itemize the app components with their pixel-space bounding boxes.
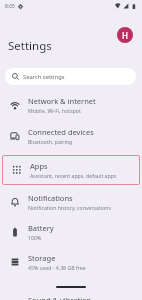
button[interactable]: Storage — [0, 247, 142, 277]
button[interactable]: Sound & vibration — [0, 289, 142, 300]
staticText: Network & internet — [28, 96, 96, 106]
button[interactable]: Search settings — [5, 68, 136, 85]
button[interactable]: Connected devices — [0, 120, 142, 151]
staticText: Notification history, conversations — [28, 204, 112, 211]
staticText: Battery — [28, 223, 54, 233]
staticText: Bluetooth, pairing — [28, 138, 73, 145]
staticText: Assistant, recent apps, default apps — [30, 172, 117, 179]
staticText: Storage — [28, 253, 56, 263]
staticText: 100% — [28, 234, 42, 241]
staticText: Notifications — [28, 193, 73, 203]
staticText: Apps — [30, 161, 48, 171]
button[interactable]: H — [117, 27, 133, 43]
staticText: 45% used - 4.38 GB free — [28, 264, 86, 271]
staticText: Search settings — [23, 73, 65, 81]
button[interactable]: Network & internet — [0, 89, 142, 120]
staticText: H — [122, 30, 128, 41]
button[interactable]: Apps — [2, 155, 140, 185]
button[interactable]: Battery — [0, 217, 142, 247]
staticText: 8:05 — [5, 3, 15, 10]
staticText: Settings — [8, 38, 52, 54]
staticText: Mobile, Wi-Fi, hotspot — [28, 107, 81, 114]
staticText: Sound & vibration — [28, 295, 92, 300]
button[interactable]: Notifications — [0, 187, 142, 217]
staticText: Connected devices — [28, 127, 94, 137]
